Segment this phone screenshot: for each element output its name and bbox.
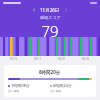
button[interactable]: 11月26日 [40,7,60,13]
staticText: 11月26日 [40,7,60,13]
button[interactable]: Previous day [30,6,38,14]
staticText: 睡眠スコア [40,15,61,20]
staticText: 02:11 [34,57,42,61]
staticText: 1時間08分 [11,83,30,88]
button[interactable]: 8時間20分 [4,65,96,97]
staticText: 浅い睡眠 [50,89,62,93]
staticText: 00:15 [10,57,18,61]
staticText: 6時間24分 [53,83,72,88]
staticText: 79 [41,21,59,37]
staticText: 04:07 [58,57,66,61]
button[interactable]: Sleep stages chart [0,37,100,56]
staticText: 深い睡眠 [8,89,20,93]
staticText: 06:03 [82,57,90,61]
button[interactable]: Next day [62,6,70,14]
staticText: 8時間20分 [39,69,61,75]
